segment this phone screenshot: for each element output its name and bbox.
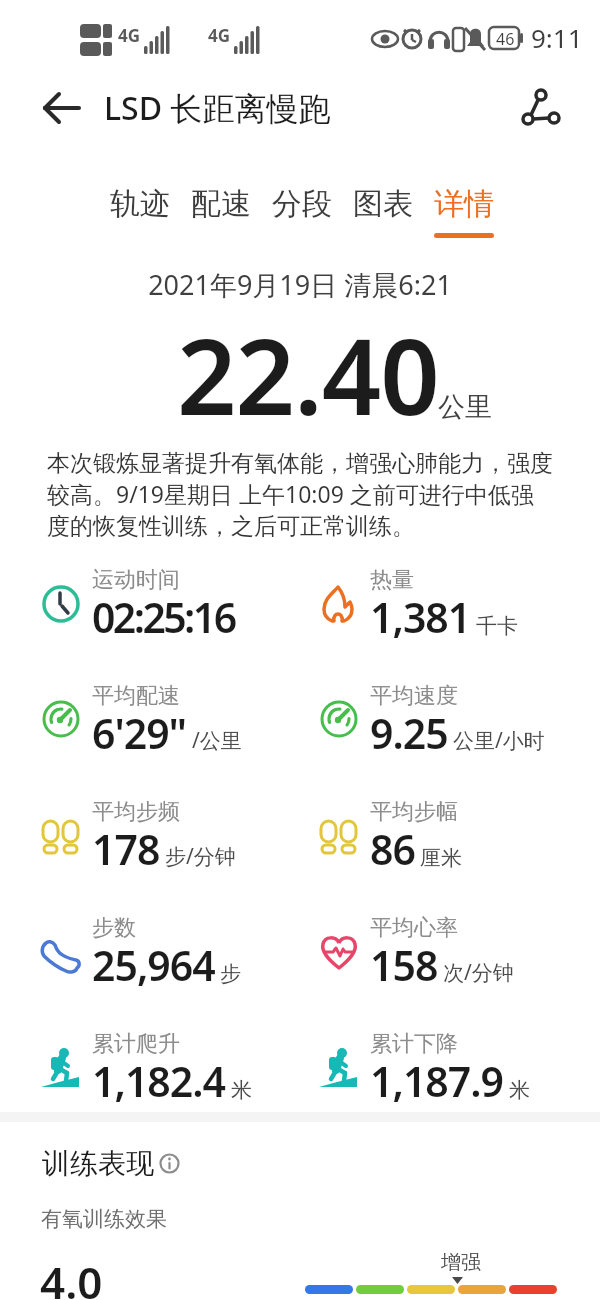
staticText: 详情 <box>434 185 494 223</box>
button[interactable]: 配速 <box>191 185 272 223</box>
staticText: 1,187.9 <box>370 1053 504 1109</box>
staticText: 9:11 <box>531 20 583 55</box>
button[interactable] <box>505 82 575 136</box>
staticText: 4G <box>118 24 141 47</box>
button[interactable]: 平均步幅 <box>317 798 462 882</box>
staticText: 6'29" <box>92 705 187 761</box>
button[interactable]: 训练表现 <box>42 1146 180 1181</box>
staticText: 累计下降 <box>370 1030 458 1058</box>
staticText: 次/分钟 <box>443 958 514 987</box>
staticText: 平均步频 <box>92 798 180 826</box>
staticText: 178 <box>92 821 160 877</box>
staticText: 图表 <box>353 185 413 223</box>
staticText: 22.40 <box>177 304 439 446</box>
staticText: 9.25 <box>370 705 448 761</box>
staticText: 轨迹 <box>110 185 170 223</box>
staticText: 分段 <box>272 185 332 223</box>
staticText: 平均配速 <box>92 682 180 710</box>
staticText: 公里/小时 <box>453 726 545 755</box>
staticText: 配速 <box>191 185 251 223</box>
button[interactable]: 热量 <box>317 566 518 650</box>
staticText: 厘米 <box>420 845 462 871</box>
button[interactable]: 运动时间 <box>39 566 235 650</box>
staticText: 步 <box>220 961 241 987</box>
staticText: 运动时间 <box>92 566 180 594</box>
button[interactable]: 平均配速 <box>39 682 242 766</box>
staticText: 步数 <box>92 914 136 942</box>
staticText: 4.0 <box>40 1252 103 1300</box>
staticText: 累计爬升 <box>92 1030 180 1058</box>
button[interactable] <box>30 84 94 132</box>
staticText: 25,964 <box>92 937 215 993</box>
button[interactable]: 图表 <box>353 185 434 223</box>
staticText: 2021年9月19日 清晨6:21 <box>0 266 600 303</box>
staticText: 公里 <box>438 390 492 424</box>
button[interactable]: 平均心率 <box>317 914 514 998</box>
button[interactable]: 平均步频 <box>39 798 236 882</box>
button[interactable]: 平均速度 <box>317 682 545 766</box>
staticText: 86 <box>370 821 415 877</box>
staticText: 02:25:16 <box>92 589 235 645</box>
button[interactable]: 累计爬升 <box>39 1030 252 1114</box>
staticText: /公里 <box>192 726 242 755</box>
button[interactable]: 累计下降 <box>317 1030 530 1114</box>
button[interactable]: 轨迹 <box>110 185 191 223</box>
staticText: 训练表现 <box>42 1146 154 1181</box>
staticText: 平均心率 <box>370 914 458 942</box>
button[interactable]: 详情 <box>434 185 494 223</box>
staticText: 步/分钟 <box>165 842 236 871</box>
staticText: 平均步幅 <box>370 798 458 826</box>
button[interactable]: 步数 <box>39 914 241 998</box>
staticText: 米 <box>231 1077 252 1103</box>
staticText: 46 <box>496 28 515 50</box>
staticText: LSD 长距离慢跑 <box>104 86 331 130</box>
staticText: 4G <box>208 24 231 47</box>
button[interactable]: 分段 <box>272 185 353 223</box>
staticText: 平均速度 <box>370 682 458 710</box>
staticText: 本次锻炼显著提升有氧体能，增强心肺能力，强度 较高。9/19星期日 上午10:0… <box>47 449 553 541</box>
staticText: 158 <box>370 937 438 993</box>
staticText: 热量 <box>370 566 414 594</box>
staticText: 增强 <box>441 1250 481 1275</box>
staticText: 1,381 <box>370 589 471 645</box>
staticText: 千卡 <box>476 613 518 639</box>
staticText: 米 <box>509 1077 530 1103</box>
staticText: 有氧训练效果 <box>41 1206 167 1232</box>
staticText: 1,182.4 <box>92 1053 226 1109</box>
